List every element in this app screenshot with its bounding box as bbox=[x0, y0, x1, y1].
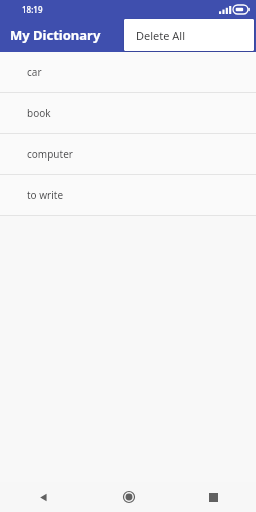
button[interactable]: Back bbox=[0, 482, 86, 512]
button[interactable]: car bbox=[0, 52, 256, 92]
button[interactable]: to write bbox=[0, 175, 256, 215]
button[interactable]: Delete All bbox=[124, 19, 254, 51]
staticText: computer bbox=[27, 147, 73, 161]
staticText: book bbox=[27, 106, 51, 120]
staticText: 18:19 bbox=[22, 4, 43, 15]
button[interactable]: book bbox=[0, 93, 256, 133]
button[interactable]: Home bbox=[86, 482, 171, 512]
staticText: Delete All bbox=[136, 28, 186, 43]
button[interactable]: computer bbox=[0, 134, 256, 174]
button[interactable]: Recent apps bbox=[171, 482, 256, 512]
staticText: to write bbox=[27, 188, 64, 202]
staticText: My Dictionary bbox=[10, 26, 101, 44]
staticText: car bbox=[27, 65, 42, 79]
